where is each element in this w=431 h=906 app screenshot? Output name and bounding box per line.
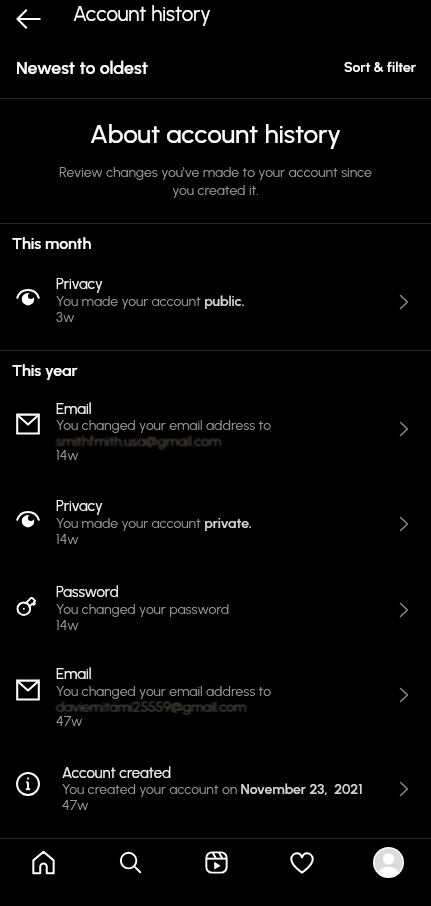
staticText: smithfmith.usa@gmail.com (56, 432, 222, 449)
staticText: You made your account private. (56, 515, 252, 532)
staticText: smithfmith.usa@gmail.com (55, 433, 221, 450)
button[interactable]: Newest to oldest (8, 47, 156, 84)
staticText: Sort & filter (344, 59, 417, 76)
staticText: 14w (56, 447, 79, 464)
staticText: smithfmith.usa@gmail.com (57, 432, 223, 449)
staticText: daviemitami25559@gmail.com (57, 699, 248, 716)
staticText: daviemitami25559@gmail.com (57, 699, 248, 716)
staticText: daviemitami25559@gmail.com (56, 699, 247, 716)
staticText: Email (56, 400, 92, 418)
staticText: You made your account public. (56, 293, 245, 310)
button[interactable]: Home (0, 839, 87, 906)
staticText: Account created (62, 764, 171, 782)
staticText: daviemitami25559@gmail.com (56, 699, 247, 716)
staticText: You changed your email address to (56, 417, 272, 434)
button[interactable] (0, 745, 431, 830)
staticText: 3w (56, 309, 75, 326)
button[interactable] (0, 652, 431, 743)
staticText: daviemitami25559@gmail.com (57, 698, 248, 715)
button[interactable]: Back (7, 0, 50, 40)
button[interactable]: Sort & filter (336, 49, 425, 82)
staticText: smithfmith.usa@gmail.com (57, 433, 223, 450)
staticText: This year (12, 361, 78, 380)
staticText: Privacy (56, 275, 103, 293)
button[interactable]: Profile (345, 839, 431, 906)
staticText: You created your account on November 23,… (62, 781, 363, 798)
button[interactable]: Reels (173, 839, 259, 906)
staticText: smithfmith.usa@gmail.com (55, 434, 221, 451)
staticText: daviemitami25559@gmail.com (56, 698, 247, 715)
staticText: 14w (56, 531, 79, 548)
button[interactable] (0, 256, 431, 343)
staticText: 47w (62, 797, 89, 814)
staticText: Review changes you've made to your accou… (54, 164, 377, 199)
staticText: 47w (56, 713, 83, 730)
staticText: smithfmith.usa@gmail.com (55, 432, 221, 449)
staticText: smithfmith.usa@gmail.com (57, 434, 223, 451)
button[interactable]: Likes (259, 839, 345, 906)
staticText: You changed your email address to (56, 683, 272, 700)
button[interactable] (0, 383, 431, 478)
button[interactable]: Search (87, 839, 173, 906)
staticText: Email (56, 665, 92, 683)
button[interactable] (0, 480, 431, 564)
staticText: Newest to oldest (16, 57, 148, 78)
staticText: You changed your password (56, 601, 230, 618)
staticText: daviemitami25559@gmail.com (55, 698, 246, 715)
staticText: smithfmith.usa@gmail.com (56, 433, 222, 450)
staticText: This month (12, 234, 92, 253)
staticText: About account history (0, 118, 431, 149)
staticText: Account history (73, 2, 211, 27)
staticText: daviemitami25559@gmail.com (55, 699, 246, 716)
staticText: daviemitami25559@gmail.com (55, 699, 246, 716)
staticText: Privacy (56, 497, 103, 515)
staticText: 14w (56, 617, 79, 634)
staticText: smithfmith.usa@gmail.com (56, 434, 222, 451)
staticText: Password (56, 583, 119, 601)
button[interactable] (0, 566, 431, 650)
